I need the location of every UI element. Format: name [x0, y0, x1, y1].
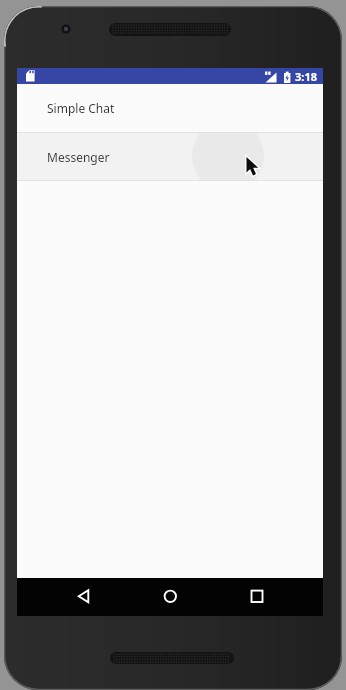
- button[interactable]: [17, 578, 119, 616]
- staticText: Messenger: [47, 149, 110, 165]
- staticText: Simple Chat: [47, 100, 115, 116]
- button[interactable]: Simple Chat: [17, 84, 323, 132]
- button[interactable]: [119, 578, 221, 616]
- button[interactable]: Messenger: [17, 133, 323, 180]
- button[interactable]: [221, 578, 323, 616]
- staticText: 3:18: [295, 69, 317, 84]
